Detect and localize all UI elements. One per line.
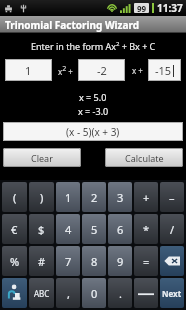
button[interactable]: 7 [56, 246, 80, 276]
staticText: (x - 5)(x + 3) [66, 125, 120, 139]
button[interactable]: 9 [108, 246, 132, 276]
button[interactable]: ( [2, 182, 27, 212]
staticText: 8 [91, 254, 98, 269]
button[interactable]: 2 [82, 182, 106, 212]
staticText: Next [162, 288, 182, 299]
button[interactable]: 8 [82, 246, 106, 276]
staticText: 5 [91, 222, 98, 237]
staticText: 9 [117, 254, 124, 269]
button[interactable]: Change input method [2, 278, 27, 308]
button[interactable]: Space [134, 278, 158, 308]
staticText: x = 5.0 [79, 91, 107, 103]
staticText: # [38, 254, 46, 269]
staticText: 1 [65, 190, 72, 205]
button[interactable]: 0 [82, 278, 106, 308]
button[interactable]: = [134, 246, 158, 276]
button[interactable]: $ [29, 214, 54, 244]
button[interactable]: – [160, 182, 184, 212]
button[interactable]: Delete [160, 246, 184, 276]
staticText: / [170, 222, 175, 237]
staticText: ) [40, 190, 44, 205]
button[interactable]: , [56, 278, 80, 308]
button[interactable]: . [108, 278, 132, 308]
staticText: ( [13, 190, 17, 205]
staticText: * [143, 222, 150, 237]
staticText: € [11, 222, 18, 237]
staticText: , [67, 286, 70, 301]
button[interactable]: + [134, 182, 158, 212]
staticText: -15 [155, 63, 172, 78]
staticText: 11:37 [157, 1, 183, 15]
staticText: 4 [65, 222, 72, 237]
button[interactable]: * [134, 214, 158, 244]
staticText: 2 [91, 190, 98, 205]
staticText: . [119, 286, 122, 301]
staticText: 1 [25, 63, 32, 78]
staticText: Clear [31, 152, 53, 164]
button[interactable]: ABC [29, 278, 54, 308]
staticText: $ [38, 222, 45, 237]
staticText: 7 [65, 254, 72, 269]
button[interactable]: (x - 5)(x + 3) [3, 122, 183, 141]
button[interactable]: Calculate [105, 148, 183, 167]
staticText: 3 [117, 190, 124, 205]
button[interactable]: / [160, 214, 184, 244]
staticText: Calculate [125, 152, 164, 164]
staticText: Trinomial Factoring Wizard [5, 18, 140, 32]
staticText: Enter in the form Ax2 + Bx + C [31, 40, 156, 53]
staticText: 0 [91, 286, 98, 301]
staticText: x + [132, 65, 143, 76]
button[interactable]: 6 [108, 214, 132, 244]
staticText: = [143, 254, 150, 269]
staticText: -2 [97, 63, 107, 78]
staticText: ABC [34, 288, 50, 299]
button[interactable]: € [2, 214, 27, 244]
button[interactable]: -15 [148, 59, 181, 81]
button[interactable]: 1 [5, 59, 52, 81]
staticText: x = -3.0 [78, 105, 109, 117]
button[interactable]: 4 [56, 214, 80, 244]
staticText: + [143, 190, 150, 205]
staticText: – [169, 190, 175, 205]
button[interactable]: 5 [82, 214, 106, 244]
button[interactable]: Next [160, 278, 184, 308]
button[interactable]: % [2, 246, 27, 276]
button[interactable]: 3 [108, 182, 132, 212]
staticText: 99 [137, 3, 147, 13]
button[interactable]: Clear [3, 148, 81, 167]
button[interactable]: # [29, 246, 54, 276]
button[interactable]: -2 [78, 59, 125, 81]
button[interactable]: ) [29, 182, 54, 212]
staticText: 6 [117, 222, 124, 237]
button[interactable]: 1 [56, 182, 80, 212]
staticText: x2 + [58, 64, 73, 77]
staticText: % [10, 254, 20, 269]
